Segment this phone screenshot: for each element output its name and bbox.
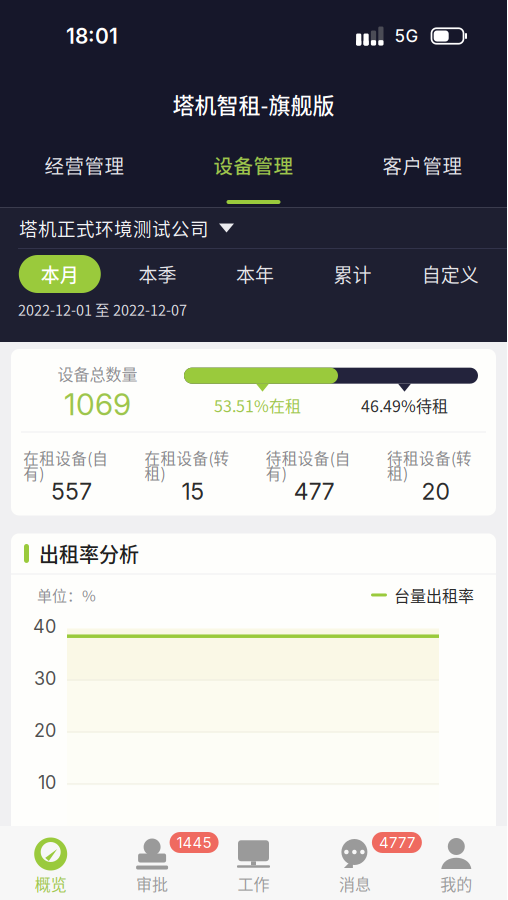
staticText: 待租设备(自 [266, 446, 351, 469]
staticText: 1445 [177, 833, 212, 851]
staticText: 租) [387, 461, 408, 484]
staticText: 自定义 [422, 260, 479, 288]
staticText: - [48, 824, 56, 845]
staticText: 设备总数量 [57, 362, 137, 385]
staticText: 557 [51, 477, 92, 505]
staticText: 本月 [41, 260, 79, 288]
staticText: 10 [38, 772, 56, 793]
button[interactable]: 1445 [101, 826, 203, 900]
staticText: 我的 [440, 872, 472, 895]
staticText: 20 [34, 720, 56, 741]
button[interactable]: 4777 [304, 826, 406, 900]
button[interactable]: 本季 [109, 255, 206, 293]
staticText: 53.51%在租 [214, 394, 301, 417]
staticText: 在租设备(自 [23, 446, 108, 469]
staticText: 工作 [237, 872, 269, 895]
staticText: 塔机智租-旗舰版 [172, 88, 334, 120]
staticText: 待租设备(转 [387, 446, 472, 469]
button[interactable]: 经营管理 [0, 136, 169, 208]
staticText: 累计 [334, 260, 372, 288]
button[interactable]: 客户管理 [338, 136, 507, 208]
button[interactable]: 自定义 [401, 255, 499, 293]
staticText: 本季 [138, 260, 176, 288]
staticText: 本年 [236, 260, 274, 288]
staticText: 18:01 [66, 23, 118, 49]
button[interactable]: 本月 [11, 255, 109, 293]
staticText: 台量出租率 [394, 583, 474, 607]
staticText: 客户管理 [382, 151, 462, 179]
staticText: 5G [394, 26, 418, 46]
staticText: 有) [23, 461, 44, 484]
staticText: 设备管理 [213, 151, 293, 179]
button[interactable]: 塔机正式环境测试公司 [0, 208, 250, 248]
staticText: 审批 [136, 872, 168, 895]
staticText: 概览 [35, 872, 67, 895]
staticText: 15 [181, 477, 204, 505]
button[interactable]: 我的 [406, 826, 507, 900]
staticText: 消息 [339, 872, 371, 895]
staticText: 塔机正式环境测试公司 [19, 215, 209, 241]
button[interactable]: 概览 [0, 826, 101, 900]
staticText: 在租设备(转 [144, 446, 229, 469]
button[interactable]: 工作 [203, 826, 304, 900]
staticText: 有) [266, 461, 287, 484]
staticText: 租) [144, 461, 165, 484]
staticText: 单位：% [37, 584, 96, 606]
staticText: 20 [421, 477, 449, 505]
staticText: 477 [294, 477, 335, 505]
staticText: 46.49%待租 [361, 394, 448, 417]
staticText: 30 [34, 668, 56, 689]
staticText: 4777 [379, 833, 415, 851]
staticText: 出租率分析 [39, 539, 139, 568]
staticText: 40 [33, 616, 56, 637]
button[interactable]: 本年 [206, 255, 304, 293]
button[interactable]: 累计 [304, 255, 401, 293]
staticText: 1069 [64, 386, 131, 422]
staticText: 经营管理 [44, 151, 124, 179]
button[interactable]: 设备管理 [169, 136, 338, 208]
staticText: 2022-12-01 至 2022-12-07 [18, 299, 187, 320]
